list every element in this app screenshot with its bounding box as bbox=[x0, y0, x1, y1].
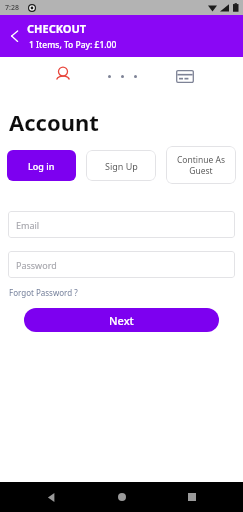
staticText: Password bbox=[16, 259, 57, 271]
button[interactable]: Forgot Password ? bbox=[9, 287, 78, 298]
button[interactable]: Sign Up bbox=[86, 150, 156, 181]
button[interactable]: Back bbox=[40, 486, 62, 508]
button[interactable]: Next bbox=[24, 308, 219, 332]
staticText: Log in bbox=[28, 160, 55, 172]
staticText: Account bbox=[9, 107, 99, 137]
button[interactable]: Payment step bbox=[176, 70, 194, 83]
button[interactable]: Continue As Guest bbox=[166, 146, 236, 184]
button[interactable]: Account step bbox=[52, 65, 74, 87]
button[interactable]: Recent apps bbox=[181, 486, 203, 508]
button[interactable]: Home bbox=[111, 486, 133, 508]
staticText: Continue As Guest bbox=[166, 154, 236, 176]
staticText: CHECKOUT bbox=[27, 21, 87, 36]
staticText: Email bbox=[16, 219, 40, 231]
staticText: Sign Up bbox=[105, 160, 138, 172]
staticText: 7:28 bbox=[5, 3, 19, 13]
button[interactable]: Password bbox=[8, 251, 235, 278]
staticText: 1 Items, To Pay: £1.00 bbox=[29, 39, 117, 51]
button[interactable]: Back bbox=[2, 23, 28, 49]
button[interactable]: Email bbox=[8, 211, 235, 238]
staticText: Next bbox=[109, 313, 134, 328]
button[interactable]: Log in bbox=[7, 150, 76, 181]
